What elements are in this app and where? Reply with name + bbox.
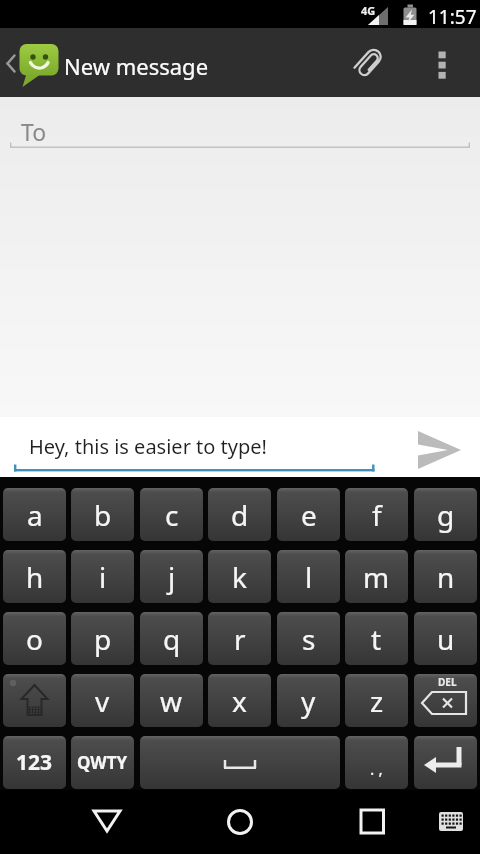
staticText: 11:57 xyxy=(428,4,477,30)
staticText: j xyxy=(168,558,176,596)
button[interactable]: x xyxy=(208,674,271,727)
button[interactable]: o xyxy=(3,612,66,665)
button[interactable] xyxy=(427,798,475,846)
staticText: t xyxy=(371,620,382,658)
button[interactable] xyxy=(3,674,66,727)
staticText: y xyxy=(301,682,316,720)
staticText: b xyxy=(94,496,112,534)
staticText: 4G xyxy=(361,3,376,18)
button[interactable]: g xyxy=(414,488,477,541)
button[interactable] xyxy=(344,40,392,88)
button[interactable]: f xyxy=(345,488,408,541)
button[interactable] xyxy=(344,794,400,850)
staticText: u xyxy=(437,620,455,658)
button[interactable]: s xyxy=(277,612,340,665)
staticText: z xyxy=(370,682,384,720)
button[interactable]: r xyxy=(208,612,271,665)
button[interactable]: q xyxy=(140,612,203,665)
button[interactable]: u xyxy=(414,612,477,665)
button[interactable] xyxy=(408,424,470,476)
button[interactable]: DEL xyxy=(414,674,477,727)
button[interactable]: h xyxy=(3,550,66,603)
button[interactable]: b xyxy=(71,488,134,541)
staticText: m xyxy=(363,558,390,596)
button[interactable]: j xyxy=(140,550,203,603)
staticText: s xyxy=(302,620,316,658)
button[interactable]: w xyxy=(140,674,203,727)
staticText: DEL xyxy=(438,675,457,689)
button[interactable]: c xyxy=(140,488,203,541)
staticText: 123 xyxy=(16,748,53,777)
button[interactable]: z xyxy=(345,674,408,727)
button[interactable]: 123 xyxy=(3,736,66,789)
button[interactable]: m xyxy=(345,550,408,603)
staticText: v xyxy=(95,682,110,720)
staticText: x xyxy=(232,682,247,720)
button[interactable]: v xyxy=(71,674,134,727)
button[interactable] xyxy=(140,736,340,789)
button[interactable]: p xyxy=(71,612,134,665)
button[interactable]: e xyxy=(277,488,340,541)
staticText: g xyxy=(437,496,455,534)
staticText: Hey, this is easier to type! xyxy=(29,433,267,460)
button[interactable] xyxy=(79,794,135,850)
button[interactable] xyxy=(0,417,480,477)
staticText: l xyxy=(305,558,313,596)
staticText: New message xyxy=(64,51,209,81)
button[interactable]: n xyxy=(414,550,477,603)
button[interactable]: a xyxy=(3,488,66,541)
button[interactable]: y xyxy=(277,674,340,727)
staticText: k xyxy=(232,558,247,596)
staticText: h xyxy=(26,558,44,596)
button[interactable]: i xyxy=(71,550,134,603)
staticText: p xyxy=(94,620,112,658)
staticText: q xyxy=(163,620,181,658)
button[interactable] xyxy=(425,40,465,84)
button[interactable]: . , xyxy=(345,736,408,789)
staticText: a xyxy=(27,496,43,534)
button[interactable] xyxy=(212,794,268,850)
staticText: . , xyxy=(370,758,383,780)
staticText: f xyxy=(372,496,382,534)
button[interactable]: QWTY xyxy=(71,736,134,789)
button[interactable]: t xyxy=(345,612,408,665)
button[interactable]: l xyxy=(277,550,340,603)
staticText: d xyxy=(231,496,249,534)
staticText: QWTY xyxy=(77,751,128,774)
button[interactable]: d xyxy=(208,488,271,541)
button[interactable]: To xyxy=(0,97,480,152)
staticText: c xyxy=(165,496,179,534)
button[interactable]: k xyxy=(208,550,271,603)
staticText: r xyxy=(234,620,246,658)
staticText: e xyxy=(301,496,317,534)
button[interactable] xyxy=(414,736,477,789)
staticText: To xyxy=(21,116,47,147)
staticText: o xyxy=(26,620,43,658)
staticText: i xyxy=(99,558,107,596)
staticText: w xyxy=(160,682,183,720)
staticText: n xyxy=(437,558,455,596)
